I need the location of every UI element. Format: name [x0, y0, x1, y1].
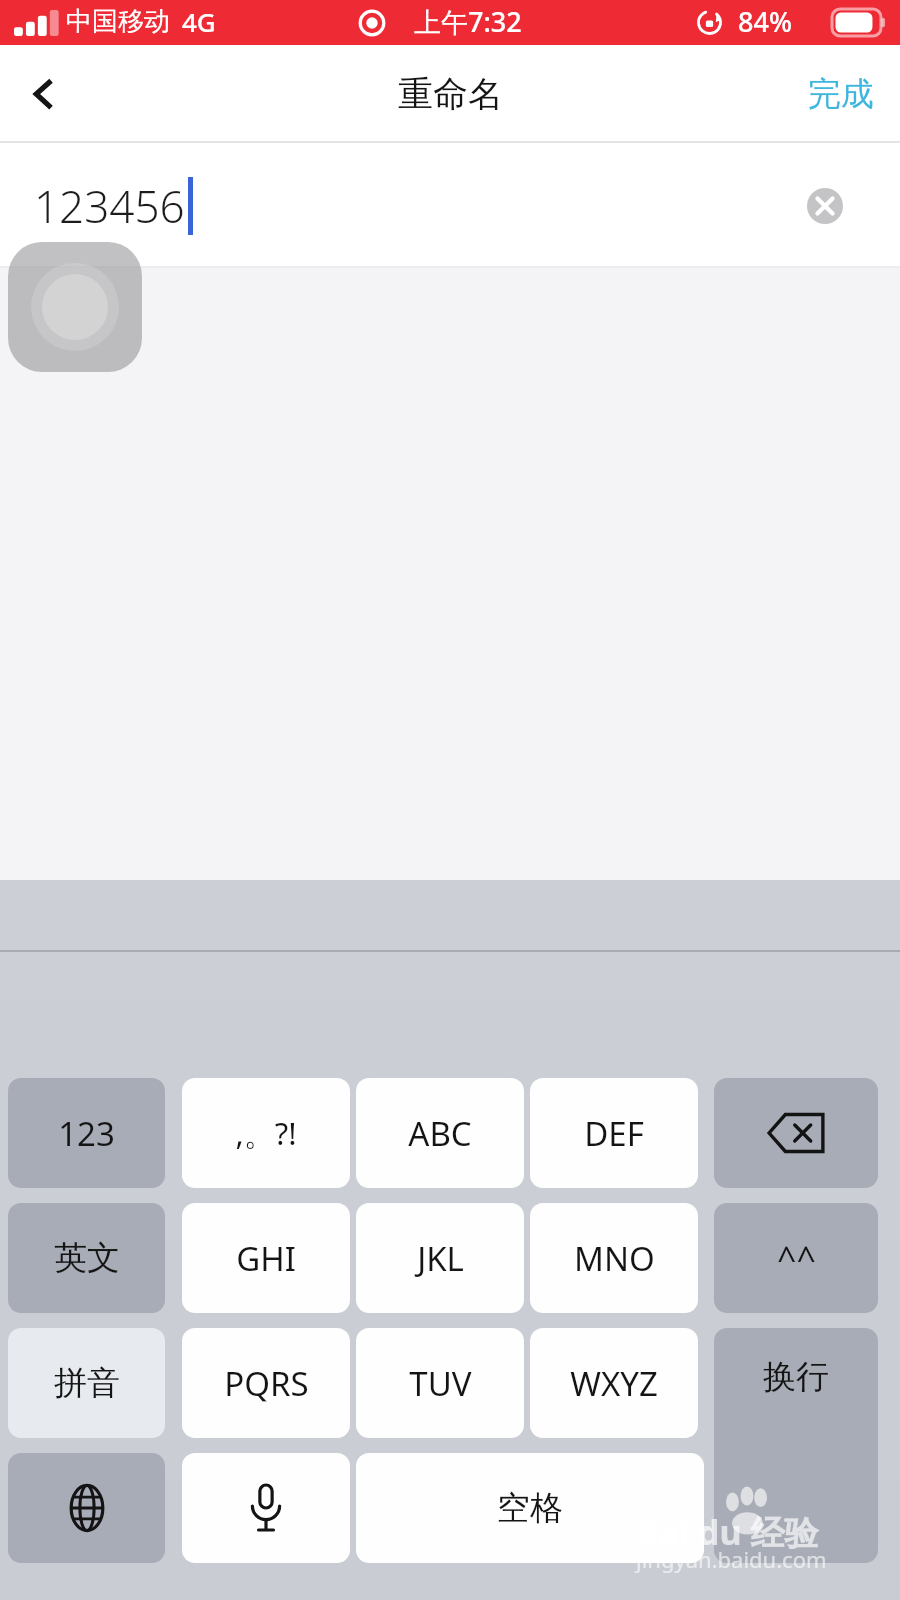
staticText: JKL — [417, 1236, 464, 1281]
button[interactable]: Voice input — [182, 1453, 350, 1563]
button[interactable]: Backspace — [714, 1078, 878, 1188]
button[interactable]: 换行 — [714, 1328, 878, 1563]
staticText: ,。?! — [235, 1112, 297, 1154]
staticText: WXYZ — [570, 1361, 658, 1406]
staticText: 完成 — [808, 73, 874, 115]
button[interactable]: DEF — [530, 1078, 698, 1188]
staticText: Bai du 经验 — [636, 1509, 819, 1555]
button[interactable]: GHI — [182, 1203, 350, 1313]
button[interactable]: 空格 — [356, 1453, 704, 1563]
staticText: 英文 — [54, 1237, 120, 1279]
button[interactable]: 英文 — [8, 1203, 165, 1313]
staticText: jingyan.baidu.com — [636, 1544, 827, 1574]
staticText: MNO — [574, 1236, 655, 1281]
button[interactable]: ^^ — [714, 1203, 878, 1313]
button[interactable]: MNO — [530, 1203, 698, 1313]
button[interactable]: ,。?! — [182, 1078, 350, 1188]
button[interactable]: Back — [0, 45, 86, 143]
staticText: 换行 — [763, 1356, 829, 1398]
button[interactable]: AssistiveTouch — [8, 242, 142, 372]
staticText: 4G — [182, 4, 216, 39]
staticText: GHI — [236, 1236, 296, 1281]
staticText: 123 — [58, 1111, 115, 1156]
staticText: 空格 — [497, 1487, 563, 1529]
staticText: DEF — [584, 1111, 644, 1156]
button[interactable]: 拼音 — [8, 1328, 165, 1438]
button[interactable]: WXYZ — [530, 1328, 698, 1438]
staticText: TUV — [409, 1361, 472, 1406]
staticText: ^^ — [777, 1235, 816, 1281]
button[interactable]: TUV — [356, 1328, 524, 1438]
button[interactable]: 完成 — [782, 45, 900, 143]
staticText: 上午7:32 — [414, 3, 522, 40]
button[interactable]: ABC — [356, 1078, 524, 1188]
button[interactable]: 123 — [8, 1078, 165, 1188]
staticText: 重命名 — [398, 72, 503, 116]
button[interactable]: 123456 — [0, 143, 900, 268]
staticText: 拼音 — [54, 1362, 120, 1404]
staticText: 123456 — [34, 176, 185, 236]
button[interactable]: Switch keyboard — [8, 1453, 165, 1563]
staticText: 中国移动 — [66, 5, 170, 38]
staticText: 84% — [738, 3, 792, 40]
button[interactable]: PQRS — [182, 1328, 350, 1438]
staticText: PQRS — [224, 1361, 309, 1406]
button[interactable]: Clear text — [805, 186, 845, 226]
button[interactable]: JKL — [356, 1203, 524, 1313]
staticText: ABC — [408, 1111, 472, 1156]
